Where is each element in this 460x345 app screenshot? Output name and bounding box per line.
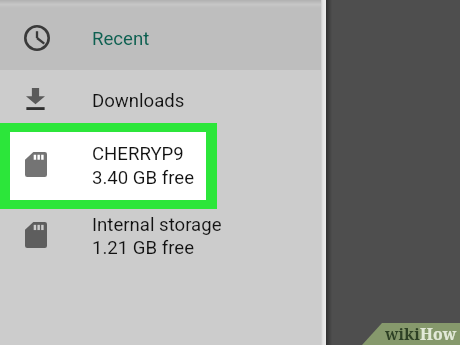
button[interactable]: Recent <box>0 0 326 70</box>
other: Recent <box>24 25 50 51</box>
staticText: Internal storage <box>92 214 222 236</box>
staticText: Downloads <box>92 90 185 112</box>
staticText: 1.21 GB free <box>92 237 195 259</box>
staticText: 3.40 GB free <box>92 167 195 189</box>
button[interactable]: Internal storage <box>0 208 326 288</box>
staticText: wiki <box>385 323 420 345</box>
button[interactable]: Downloads <box>0 70 326 123</box>
button[interactable]: CHERRYP9 <box>0 123 326 208</box>
staticText: How <box>420 323 457 345</box>
staticText: CHERRYP9 <box>92 143 184 165</box>
staticText: Recent <box>92 28 150 50</box>
other: Downloads <box>26 88 45 110</box>
